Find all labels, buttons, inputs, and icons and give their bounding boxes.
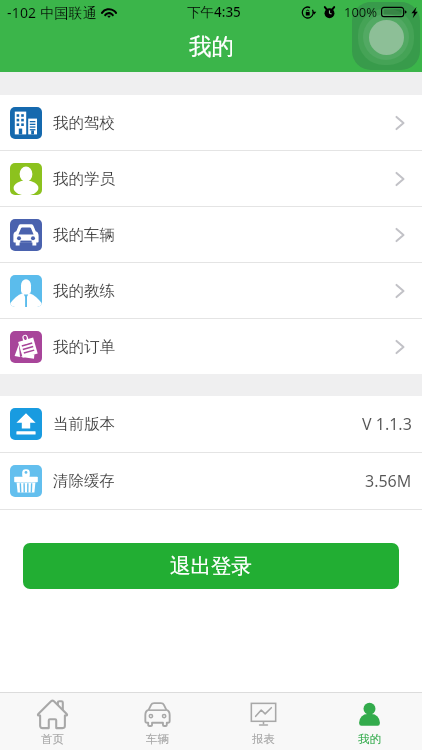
staticText: 车辆 bbox=[146, 732, 169, 746]
staticText: V 1.1.3 bbox=[362, 413, 412, 435]
button[interactable]: 首页 bbox=[0, 693, 105, 750]
staticText: -102 中国联通 bbox=[7, 3, 97, 22]
button[interactable]: 当前版本 bbox=[0, 396, 422, 453]
staticText: 当前版本 bbox=[53, 414, 115, 434]
staticText: 我的驾校 bbox=[53, 113, 115, 133]
staticText: 首页 bbox=[41, 732, 64, 746]
staticText: 清除缓存 bbox=[53, 471, 115, 491]
staticText: 我的车辆 bbox=[53, 225, 115, 245]
staticText: 我的学员 bbox=[53, 169, 115, 189]
button[interactable]: 我的学员 bbox=[0, 151, 422, 207]
staticText: 下午4:35 bbox=[187, 3, 241, 21]
staticText: 退出登录 bbox=[170, 553, 252, 579]
button[interactable]: 我的教练 bbox=[0, 263, 422, 319]
staticText: 我的 bbox=[189, 32, 234, 60]
button[interactable]: 报表 bbox=[210, 693, 316, 750]
button[interactable]: 我的订单 bbox=[0, 319, 422, 374]
button[interactable]: 退出登录 bbox=[23, 543, 399, 589]
button[interactable]: 我的 bbox=[316, 693, 422, 750]
staticText: 3.56M bbox=[365, 470, 412, 492]
button[interactable]: 车辆 bbox=[105, 693, 210, 750]
button[interactable]: 我的驾校 bbox=[0, 95, 422, 151]
staticText: 报表 bbox=[252, 732, 275, 746]
staticText: 我的 bbox=[358, 732, 381, 746]
staticText: 我的教练 bbox=[53, 281, 115, 301]
button[interactable]: 我的车辆 bbox=[0, 207, 422, 263]
button[interactable]: AssistiveTouch bbox=[352, 2, 420, 70]
staticText: 我的订单 bbox=[53, 337, 115, 357]
staticText: 100% bbox=[344, 3, 378, 21]
button[interactable]: 清除缓存 bbox=[0, 453, 422, 510]
